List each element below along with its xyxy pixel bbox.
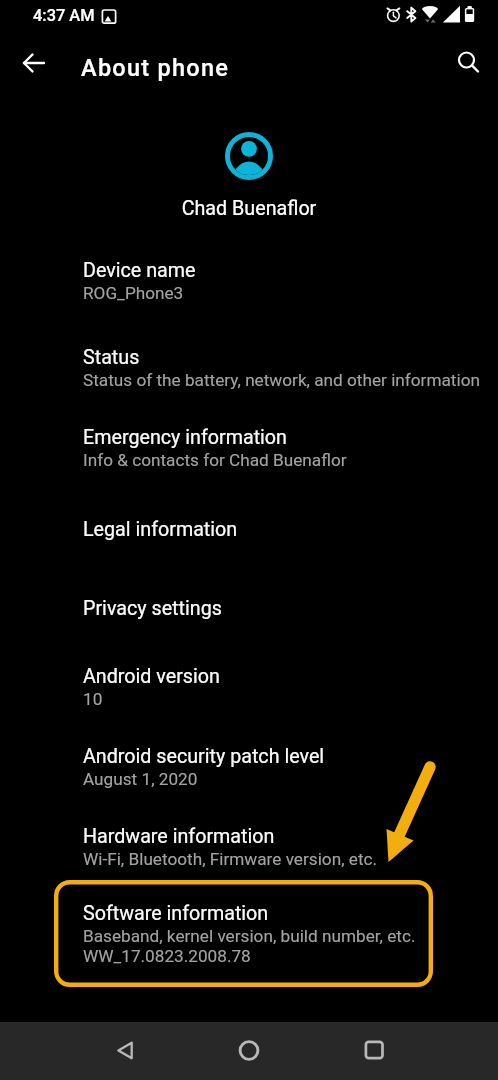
button[interactable]: Software information (54, 880, 433, 987)
button[interactable]: Back (10, 39, 58, 87)
staticText: Chad Buenaflor (0, 197, 498, 220)
staticText: Hardware information (83, 825, 275, 848)
button[interactable]: Back (101, 1027, 149, 1075)
button[interactable]: Status (0, 327, 498, 394)
staticText: ROG_Phone3 (83, 283, 184, 303)
button[interactable]: Legal information (0, 499, 498, 547)
staticText: Status (83, 346, 140, 369)
staticText: Info & contacts for Chad Buenaflor (83, 450, 347, 470)
staticText: Android security patch level (83, 745, 325, 768)
staticText: About phone (81, 54, 230, 82)
staticText: Wi-Fi, Bluetooth, Firmware version, etc. (83, 849, 378, 869)
button[interactable]: Emergency information (0, 407, 498, 474)
staticText: 10 (83, 689, 103, 709)
button[interactable]: Recents (350, 1027, 398, 1075)
staticText: August 1, 2020 (83, 769, 198, 789)
button[interactable]: Device name (0, 240, 498, 307)
button[interactable]: Hardware information (0, 806, 498, 873)
staticText: Privacy settings (83, 597, 222, 620)
button[interactable]: Privacy settings (0, 578, 498, 626)
button[interactable]: Android version (0, 646, 498, 713)
staticText: Emergency information (83, 426, 287, 449)
staticText: Device name (83, 259, 196, 282)
staticText: Software information (83, 902, 269, 925)
staticText: WW_17.0823.2008.78 (83, 946, 251, 966)
staticText: Status of the battery, network, and othe… (83, 370, 480, 390)
button[interactable]: Home (225, 1027, 273, 1075)
button[interactable]: Search (445, 39, 493, 87)
staticText: Baseband, kernel version, build number, … (83, 926, 416, 946)
staticText: Legal information (83, 518, 238, 541)
button[interactable]: Android security patch level (0, 726, 498, 793)
staticText: Android version (83, 665, 220, 688)
staticText: 4:37 AM (33, 6, 95, 25)
